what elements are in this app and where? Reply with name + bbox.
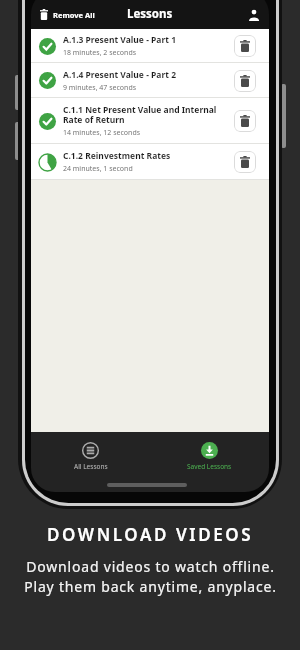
staticText: A.1.3 Present Value - Part 1 xyxy=(63,34,176,46)
staticText: 24 minutes, 1 second xyxy=(63,164,133,174)
button[interactable] xyxy=(234,35,256,57)
button[interactable] xyxy=(248,9,260,21)
button[interactable]: All Lessons xyxy=(31,442,150,471)
button[interactable] xyxy=(234,110,256,132)
staticText: 14 minutes, 12 seconds xyxy=(63,128,141,138)
staticText: Remove All xyxy=(53,10,95,20)
button[interactable]: A.1.4 Present Value - Part 2 xyxy=(31,63,269,98)
staticText: Lessons xyxy=(127,6,173,22)
staticText: Saved Lessons xyxy=(187,462,232,471)
button[interactable]: C.1.1 Net Present Value and Internal Rat… xyxy=(31,98,269,144)
button[interactable]: A.1.3 Present Value - Part 1 xyxy=(31,29,269,63)
button[interactable]: Remove All xyxy=(40,9,95,20)
button[interactable] xyxy=(234,70,256,92)
staticText: 9 minutes, 47 seconds xyxy=(63,83,137,93)
button[interactable] xyxy=(234,151,256,173)
staticText: A.1.4 Present Value - Part 2 xyxy=(63,69,176,81)
staticText: 18 minutes, 2 seconds xyxy=(63,48,137,58)
button[interactable]: C.1.2 Reinvestment Rates xyxy=(31,144,269,180)
staticText: DOWNLOAD VIDEOS xyxy=(47,523,254,546)
staticText: All Lessons xyxy=(74,462,108,471)
staticText: Download videos to watch offline. Play t… xyxy=(24,557,277,596)
button[interactable]: Saved Lessons xyxy=(150,442,269,471)
staticText: C.1.2 Reinvestment Rates xyxy=(63,150,171,162)
staticText: C.1.1 Net Present Value and Internal Rat… xyxy=(63,104,217,126)
